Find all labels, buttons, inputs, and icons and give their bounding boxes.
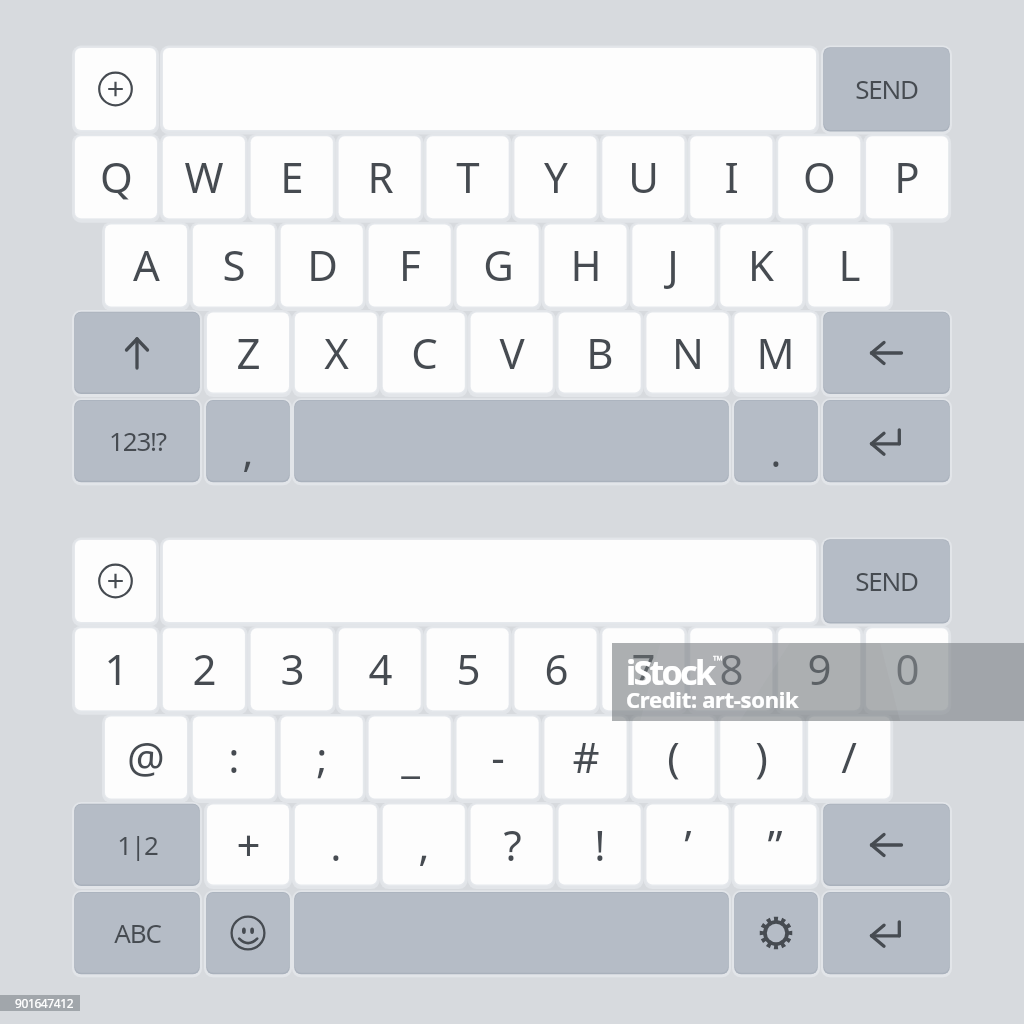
button[interactable]: 3 (251, 628, 333, 710)
button[interactable]: C (383, 313, 465, 393)
button[interactable]: 1|2 (75, 805, 199, 885)
button[interactable]: SEND (824, 48, 949, 130)
button[interactable]: A (105, 224, 187, 306)
button[interactable]: ! (559, 805, 641, 885)
button[interactable]: 0 (866, 628, 948, 710)
button[interactable]: N (647, 313, 729, 393)
button[interactable]: . (735, 401, 817, 481)
staticText: Credit: art-sonik (626, 684, 799, 714)
staticText: P (894, 148, 920, 205)
button[interactable]: ABC (75, 893, 199, 973)
button[interactable]: Z (207, 313, 289, 393)
button[interactable]: / (808, 716, 890, 798)
button[interactable]: 5 (427, 628, 509, 710)
button[interactable]: - (457, 716, 539, 798)
button[interactable]: ( (632, 716, 714, 798)
staticText: V (499, 324, 525, 381)
staticText: G (483, 236, 514, 293)
button[interactable]: , (207, 401, 289, 481)
button[interactable]: J (632, 224, 714, 306)
staticText: . (330, 816, 342, 873)
staticText: W (184, 148, 224, 205)
button[interactable]: @ (105, 716, 187, 798)
staticText: . (770, 422, 782, 479)
staticText: , (418, 816, 430, 873)
button[interactable]: G (457, 224, 539, 306)
button[interactable]: Backspace (824, 313, 949, 393)
button[interactable]: . (295, 805, 377, 885)
button[interactable]: F (369, 224, 451, 306)
button[interactable]: S (193, 224, 275, 306)
button[interactable]: U (602, 136, 684, 218)
button[interactable]: X (295, 313, 377, 393)
button[interactable]: 7 (602, 628, 684, 710)
staticText: R (367, 148, 394, 205)
button[interactable]: H (545, 224, 627, 306)
button[interactable]: L (808, 224, 890, 306)
button[interactable]: W (163, 136, 245, 218)
button[interactable]: 123!? (75, 401, 199, 481)
staticText: A (133, 236, 160, 293)
button[interactable]: 2 (163, 628, 245, 710)
staticText: @ (127, 728, 165, 785)
button[interactable]: ” (734, 805, 816, 885)
button[interactable]: Settings (735, 893, 817, 973)
staticText: ? (503, 816, 522, 873)
button[interactable]: Enter (824, 893, 949, 973)
button[interactable]: Add attachment (75, 48, 156, 130)
button[interactable]: Q (75, 136, 157, 218)
button[interactable]: R (339, 136, 421, 218)
staticText: 3 (280, 640, 305, 697)
button[interactable]: 8 (690, 628, 772, 710)
button[interactable]: P (866, 136, 948, 218)
button[interactable]: B (559, 313, 641, 393)
button[interactable]: : (193, 716, 275, 798)
staticText: ’ (684, 816, 692, 873)
staticText: 9 (807, 640, 832, 697)
staticText: ( (667, 728, 680, 785)
button[interactable]: Enter (824, 401, 949, 481)
button[interactable]: ) (720, 716, 802, 798)
button[interactable]: Add attachment (75, 540, 156, 622)
button[interactable]: O (778, 136, 860, 218)
button[interactable]: # (545, 716, 627, 798)
button[interactable]: 9 (778, 628, 860, 710)
button[interactable]: Shift (75, 313, 199, 393)
button[interactable]: Emoji (207, 893, 289, 973)
button[interactable]: I (690, 136, 772, 218)
button[interactable]: V (471, 313, 553, 393)
staticText: Z (236, 324, 261, 381)
button[interactable]: + (207, 805, 289, 885)
staticText: : (228, 728, 240, 785)
button[interactable]: Y (515, 136, 597, 218)
button[interactable]: 1 (75, 628, 157, 710)
staticText: X (324, 324, 349, 381)
staticText: 7 (631, 640, 656, 697)
staticText: Y (544, 148, 568, 205)
button[interactable]: , (383, 805, 465, 885)
staticText: iStock (626, 649, 714, 695)
button[interactable]: T (427, 136, 509, 218)
button[interactable]: ? (471, 805, 553, 885)
button[interactable]: SEND (824, 540, 949, 622)
staticText: 6 (544, 640, 569, 697)
staticText: ABC (114, 915, 161, 950)
staticText: _ (401, 728, 420, 785)
button[interactable]: _ (369, 716, 451, 798)
button[interactable]: K (720, 224, 802, 306)
button[interactable]: ’ (647, 805, 729, 885)
staticText: 1|2 (117, 827, 158, 862)
staticText: 2 (192, 640, 217, 697)
button[interactable]: 4 (339, 628, 421, 710)
button[interactable]: M (734, 313, 816, 393)
button[interactable]: D (281, 224, 363, 306)
button[interactable]: ; (281, 716, 363, 798)
staticText: # (572, 728, 600, 785)
button[interactable]: Backspace (824, 805, 949, 885)
button[interactable]: 6 (515, 628, 597, 710)
button[interactable]: E (251, 136, 333, 218)
